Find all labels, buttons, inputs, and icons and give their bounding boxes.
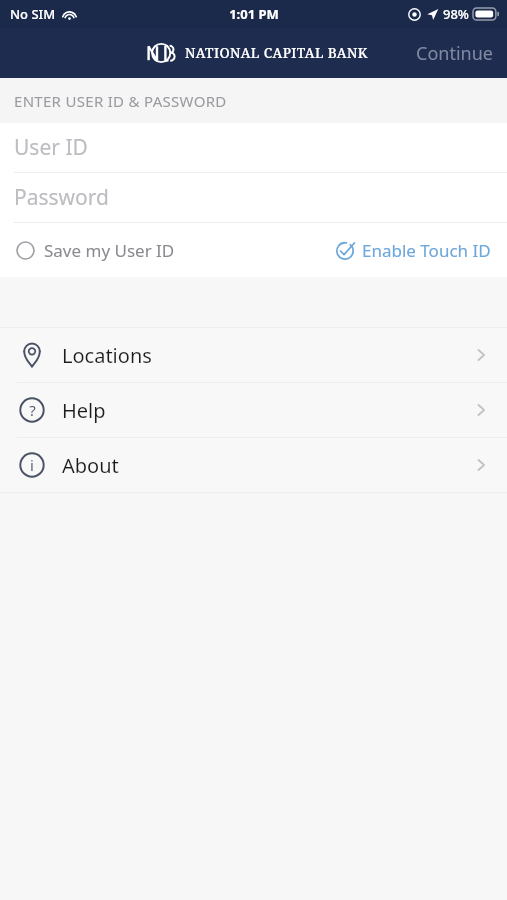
- button[interactable]: Continue: [402, 31, 507, 76]
- staticText: Continue: [416, 41, 493, 66]
- staticText: Help: [62, 397, 106, 424]
- button[interactable]: Enable Touch ID: [333, 233, 493, 268]
- button[interactable]: Locations: [0, 328, 507, 382]
- staticText: NATIONAL CAPITAL BANK: [185, 44, 368, 62]
- staticText: User ID: [14, 133, 88, 162]
- button[interactable]: ?: [0, 383, 507, 437]
- staticText: ENTER USER ID & PASSWORD: [14, 91, 227, 111]
- other: Open: [471, 400, 491, 420]
- button[interactable]: User ID: [0, 123, 507, 172]
- staticText: 98%: [443, 5, 469, 23]
- staticText: About: [62, 452, 119, 479]
- staticText: Locations: [62, 342, 152, 369]
- other: Open: [471, 345, 491, 365]
- other: Open: [471, 455, 491, 475]
- staticText: Password: [14, 183, 109, 212]
- staticText: Enable Touch ID: [362, 239, 491, 262]
- staticText: 1:01 PM: [229, 5, 279, 23]
- button[interactable]: Password: [0, 173, 507, 222]
- staticText: Save my User ID: [44, 239, 175, 262]
- staticText: i: [30, 455, 34, 475]
- staticText: No SIM: [10, 5, 56, 23]
- button[interactable]: i: [0, 438, 507, 492]
- staticText: ?: [29, 400, 36, 420]
- button[interactable]: Save my User ID: [14, 233, 177, 268]
